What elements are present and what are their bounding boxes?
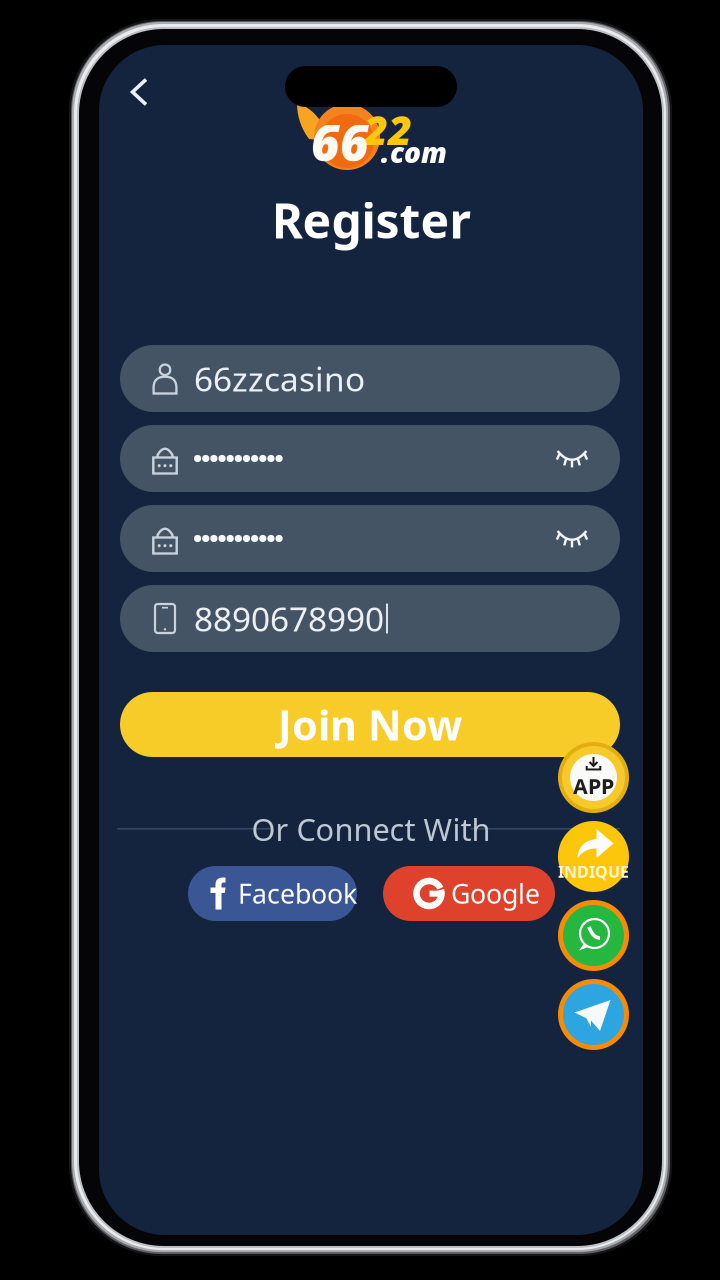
staticText: Join Now: [278, 696, 462, 753]
button[interactable]: Facebook: [188, 866, 357, 921]
staticText: Register: [271, 187, 470, 253]
button[interactable]: Download app: [558, 742, 629, 813]
button[interactable]: [120, 505, 620, 572]
button[interactable]: Back: [111, 64, 167, 120]
button[interactable]: Telegram: [558, 979, 629, 1050]
button[interactable]: Join Now: [120, 692, 620, 757]
button[interactable]: Show password: [550, 436, 594, 480]
staticText: 8890678990: [194, 596, 384, 641]
button[interactable]: WhatsApp: [558, 900, 629, 971]
staticText: INDIQUE: [558, 861, 629, 882]
staticText: 22: [364, 101, 412, 157]
button[interactable]: Google: [383, 866, 555, 921]
staticText: Facebook: [238, 875, 357, 912]
button[interactable]: Indique: [558, 821, 629, 892]
staticText: APP: [573, 771, 614, 801]
button[interactable]: [120, 425, 620, 492]
button[interactable]: 66zzcasino: [120, 345, 620, 412]
button[interactable]: Show confirm password: [550, 516, 594, 560]
button[interactable]: 8890678990: [120, 585, 620, 652]
staticText: 66: [311, 108, 369, 175]
staticText: 66zzcasino: [194, 356, 365, 401]
staticText: .com: [381, 133, 447, 171]
staticText: Google: [451, 875, 540, 912]
staticText: Or Connect With: [251, 808, 490, 850]
